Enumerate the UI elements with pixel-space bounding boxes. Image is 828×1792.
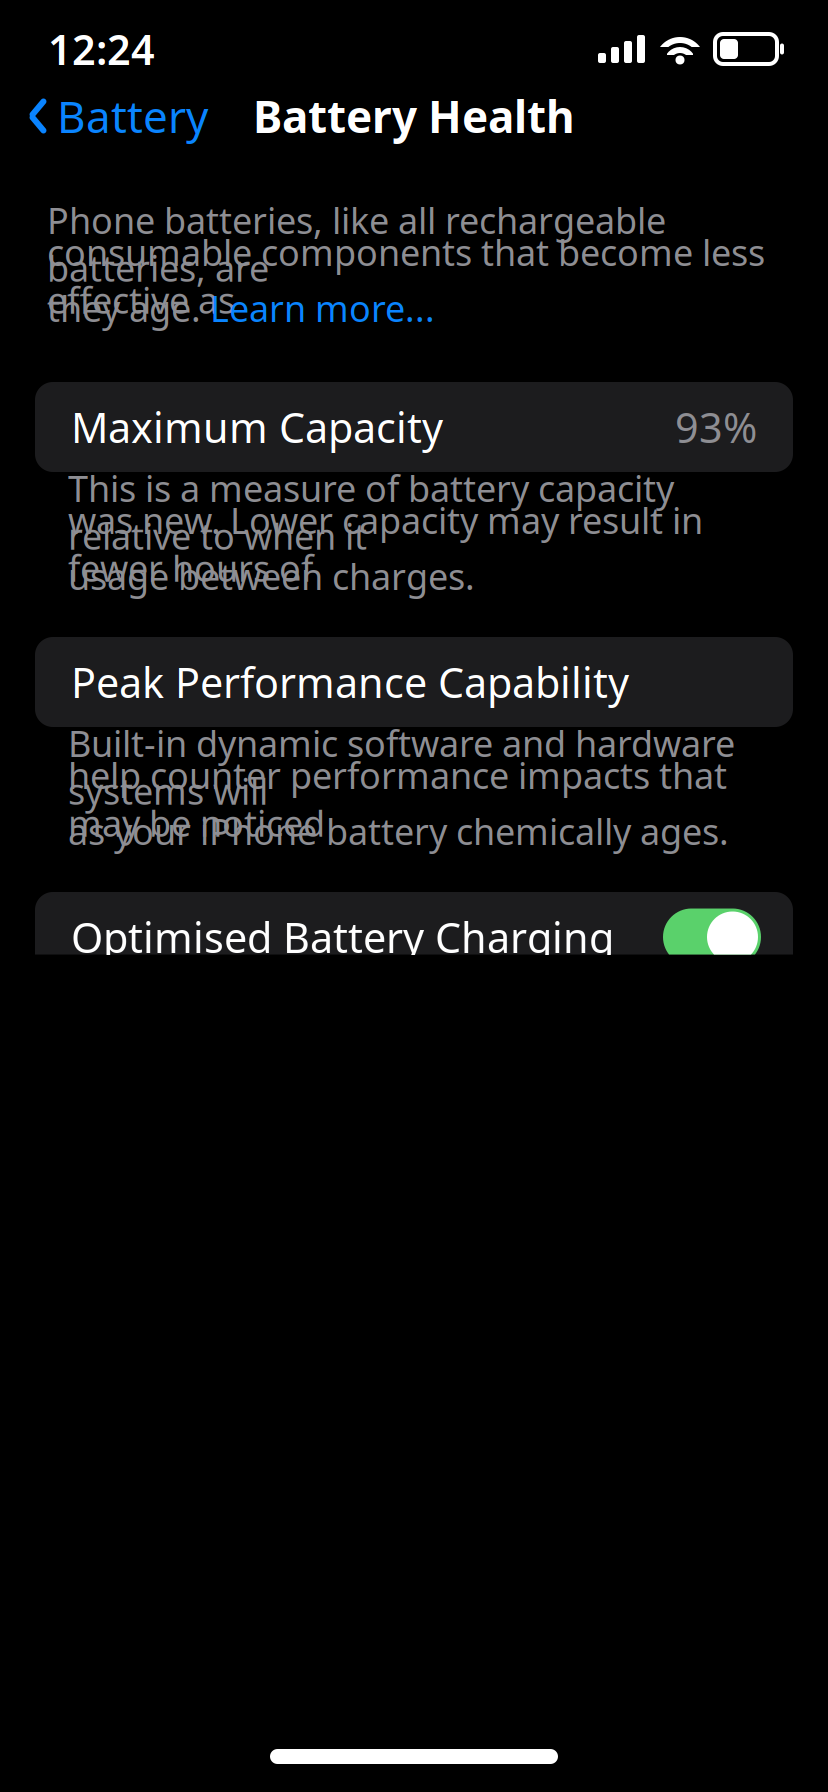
staticText: Built-in dynamic software and hardware s… (68, 719, 735, 815)
staticText: This is a measure of battery capacity re… (68, 464, 674, 560)
staticText: Maximum Capacity (71, 400, 443, 454)
staticText: Battery (57, 87, 208, 145)
staticText: 93% (675, 400, 757, 454)
staticText: usage between charges. (68, 552, 475, 600)
staticText: Phone batteries, like all rechargeable b… (47, 196, 666, 292)
staticText: as your iPhone battery chemically ages. (68, 807, 729, 855)
staticText: was new. Lower capacity may result in fe… (68, 496, 703, 592)
staticText: Battery Health (253, 87, 575, 145)
staticText: consumable components that become less e… (47, 228, 765, 324)
button[interactable]: Peak Performance Capability (35, 637, 793, 727)
button[interactable]: Battery (24, 77, 212, 155)
button[interactable]: Learn more... (210, 284, 435, 332)
staticText: Peak Performance Capability (71, 655, 629, 709)
staticText: help counter performance impacts that ma… (68, 751, 727, 847)
staticText: Optimised Battery Charging (71, 910, 614, 964)
button[interactable]: Optimised Battery Charging (35, 892, 793, 982)
staticText: 12:24 (48, 22, 155, 76)
staticText: Learn more... (210, 284, 435, 332)
staticText: they age. (47, 284, 210, 332)
button[interactable]: Maximum Capacity (35, 382, 793, 472)
